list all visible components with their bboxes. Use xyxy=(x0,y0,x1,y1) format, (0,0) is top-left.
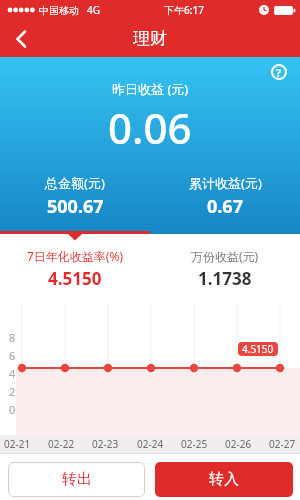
staticText: 7日年化收益率(%) xyxy=(27,248,124,264)
staticText: 6 xyxy=(9,348,16,363)
staticText: 转入 xyxy=(209,470,239,489)
staticText: 02-25 xyxy=(181,437,208,451)
staticText: 02-22 xyxy=(48,437,75,451)
staticText: 转出 xyxy=(62,470,92,489)
staticText: 昨日收益 (元) xyxy=(112,80,189,98)
staticText: 02-26 xyxy=(225,437,252,451)
button[interactable]: ? xyxy=(271,64,287,80)
staticText: 02-21 xyxy=(4,437,31,451)
staticText: 总金额(元) xyxy=(45,174,105,192)
staticText: 万份收益(元) xyxy=(191,248,259,264)
staticText: ? xyxy=(276,65,282,80)
staticText: 累计收益(元) xyxy=(189,174,262,192)
staticText: 0.67 xyxy=(207,194,243,219)
staticText: 0 xyxy=(9,402,16,417)
button[interactable]: 转出 xyxy=(8,462,145,497)
staticText: 1.1738 xyxy=(198,267,252,290)
button[interactable]: 7日年化收益率(%) xyxy=(0,234,150,296)
staticText: 02-24 xyxy=(137,437,164,451)
staticText: 4 xyxy=(9,366,16,381)
button[interactable]: 万份收益(元) xyxy=(150,234,300,296)
staticText: 中国移动 xyxy=(39,4,79,17)
staticText: 4.5150 xyxy=(242,342,274,356)
staticText: 下午6:17 xyxy=(164,3,204,17)
staticText: 02-27 xyxy=(269,437,296,451)
staticText: 8 xyxy=(9,330,16,345)
staticText: 4G xyxy=(87,3,100,17)
staticText: 0.06 xyxy=(108,99,192,156)
staticText: 02-23 xyxy=(92,437,119,451)
staticText: 4.5150 xyxy=(48,267,102,290)
staticText: 2 xyxy=(9,384,16,399)
button[interactable] xyxy=(6,24,36,54)
staticText: 理财 xyxy=(133,28,167,49)
button[interactable]: 转入 xyxy=(155,462,293,497)
staticText: 500.67 xyxy=(47,194,104,219)
